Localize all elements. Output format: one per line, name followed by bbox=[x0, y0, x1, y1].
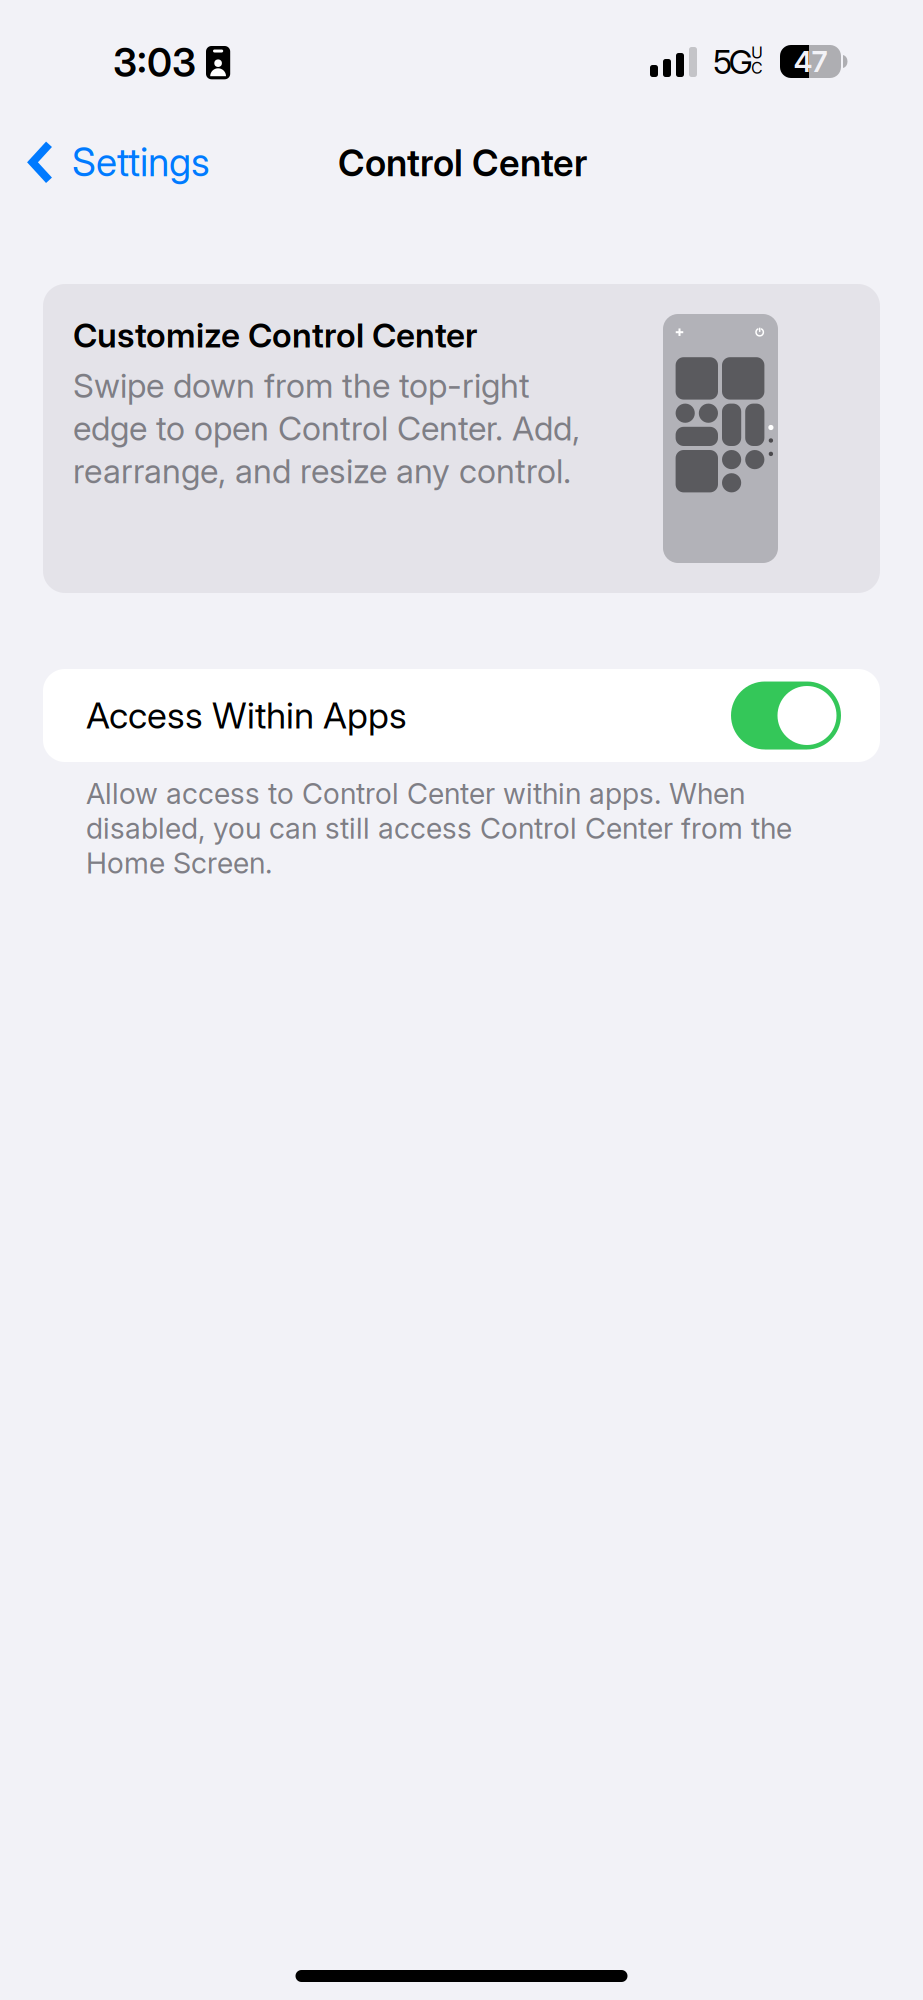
button[interactable]: Access Within Apps bbox=[43, 669, 880, 762]
staticText: Swipe down from the top-right edge to op… bbox=[73, 365, 580, 491]
staticText: 3:03 bbox=[113, 39, 196, 86]
staticText: Access Within Apps bbox=[86, 694, 407, 737]
staticText: U bbox=[751, 43, 763, 62]
staticText: 47 bbox=[793, 44, 827, 79]
staticText: C bbox=[751, 58, 763, 78]
staticText: Control Center bbox=[338, 141, 587, 185]
staticText: Customize Control Center bbox=[73, 315, 477, 355]
staticText: 5G bbox=[713, 42, 753, 82]
staticText: Settings bbox=[72, 139, 210, 186]
button[interactable]: Settings bbox=[0, 127, 224, 198]
staticText: Allow access to Control Center within ap… bbox=[86, 776, 792, 880]
